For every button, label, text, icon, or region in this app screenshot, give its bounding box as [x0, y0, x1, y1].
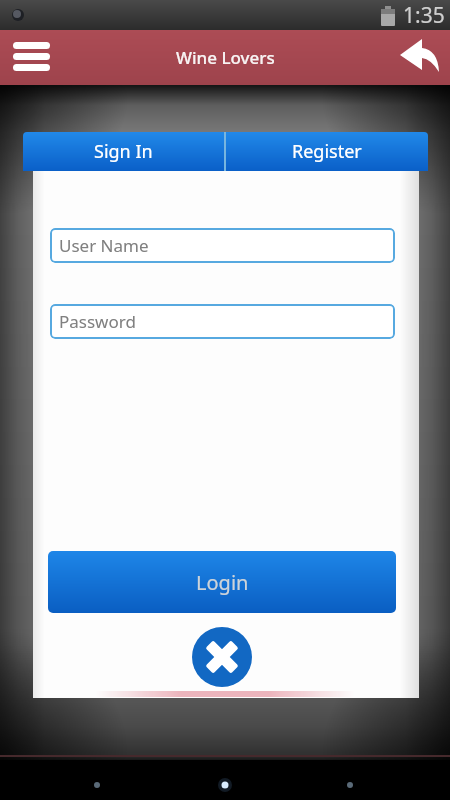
- button[interactable]: [192, 627, 252, 687]
- staticText: 1:35: [403, 1, 445, 30]
- staticText: Register: [292, 139, 362, 164]
- button[interactable]: [10, 39, 54, 76]
- button[interactable]: User Name: [50, 228, 395, 263]
- button[interactable]: Sign In: [23, 132, 224, 171]
- staticText: Sign In: [94, 139, 153, 164]
- button[interactable]: Password: [50, 304, 395, 339]
- staticText: Password: [59, 310, 136, 333]
- staticText: Wine Lovers: [176, 46, 275, 69]
- staticText: User Name: [59, 234, 149, 257]
- button[interactable]: Register: [226, 132, 428, 171]
- button[interactable]: [396, 38, 442, 78]
- button[interactable]: Login: [48, 551, 396, 613]
- staticText: Login: [196, 569, 249, 596]
